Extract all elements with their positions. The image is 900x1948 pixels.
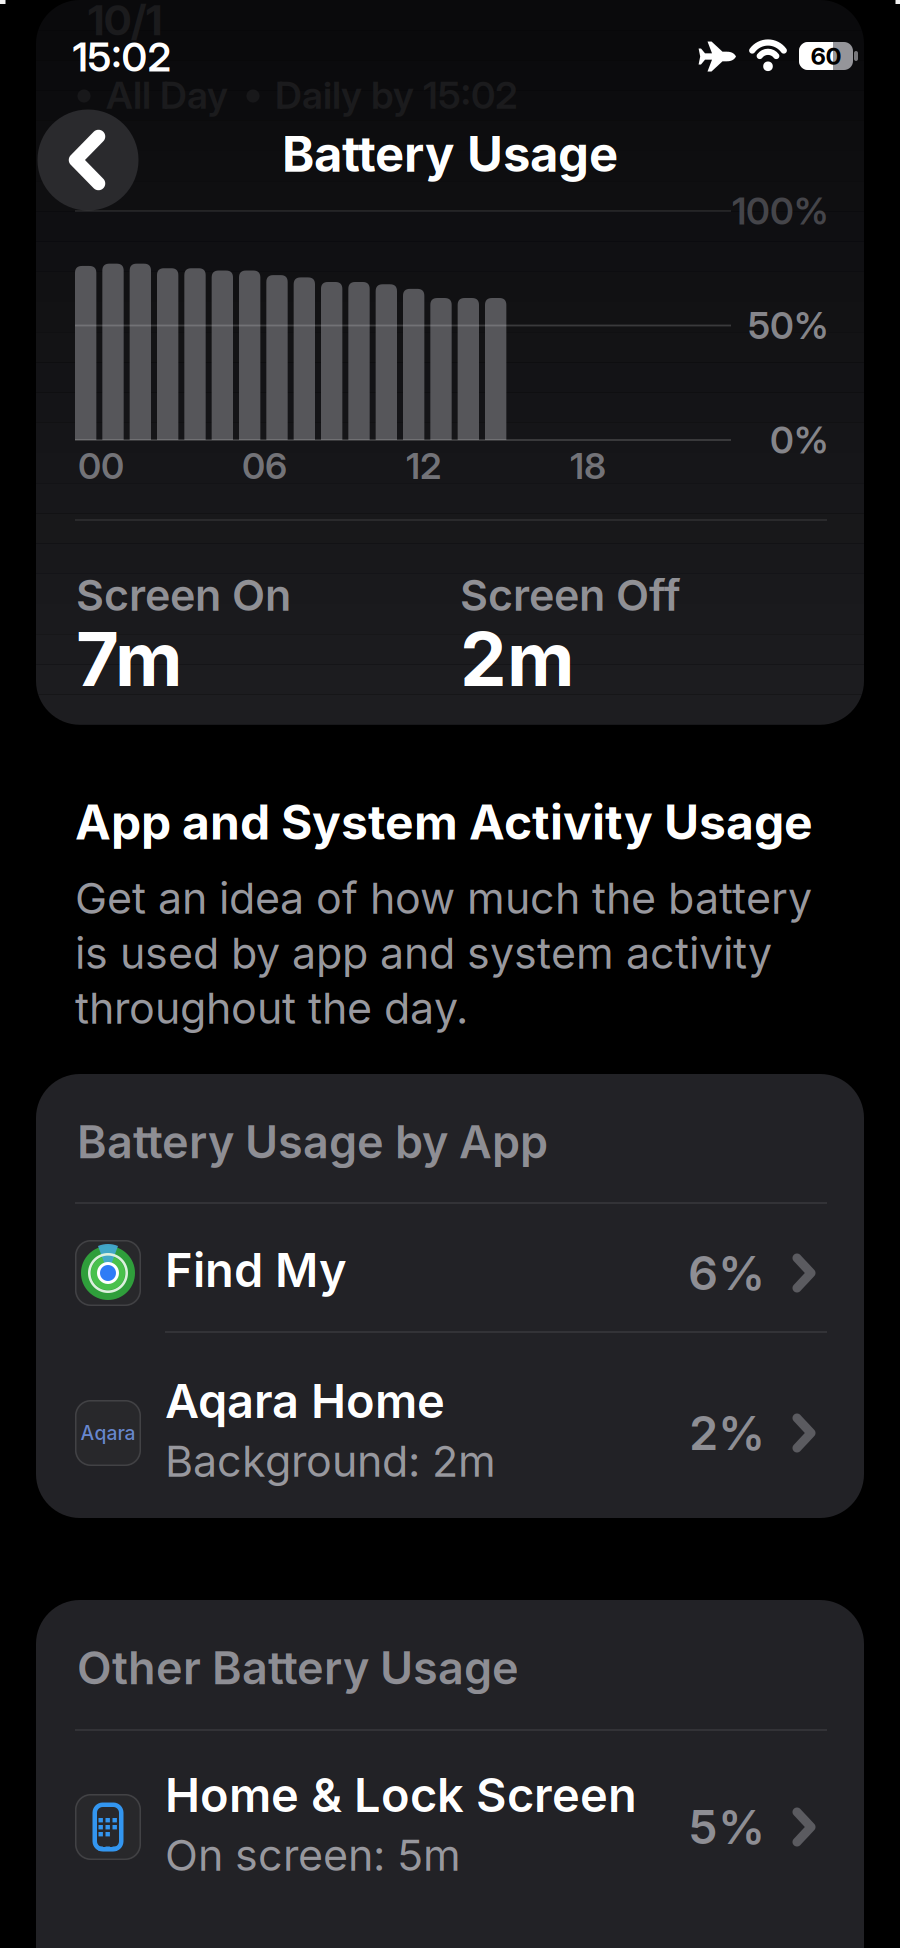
staticText: 2m (460, 614, 575, 704)
staticText: is used by app and system activity (75, 927, 772, 979)
staticText: 12 (406, 444, 441, 488)
staticText: 0% (770, 418, 828, 462)
staticText: throughout the day. (75, 982, 468, 1034)
staticText: 15:02 (72, 33, 171, 81)
staticText: Background: 2m (165, 1435, 496, 1487)
staticText: 10/1 (88, 0, 162, 45)
staticText: Aqara (80, 1421, 135, 1445)
staticText: Screen On (76, 569, 291, 621)
button[interactable]: Back (37, 109, 138, 210)
staticText: On screen: 5m (165, 1829, 461, 1881)
staticText: Home & Lock Screen (165, 1767, 637, 1823)
staticText: Screen Off (460, 569, 681, 621)
staticText: 50% (748, 303, 828, 348)
button[interactable]: Home & Lock Screen (36, 1737, 864, 1917)
staticText: 2% (689, 1405, 765, 1461)
staticText: Aqara Home (165, 1373, 445, 1429)
staticText: 00 (78, 444, 124, 488)
staticText: 100% (732, 189, 828, 233)
staticText: 18 (570, 444, 606, 488)
staticText: Find My (165, 1242, 347, 1298)
staticText: App and System Activity Usage (75, 793, 813, 851)
button[interactable]: Find My (36, 1208, 864, 1338)
staticText: 06 (242, 444, 287, 488)
staticText: 6% (688, 1245, 765, 1301)
staticText: All Day (106, 72, 228, 118)
staticText: Other Battery Usage (77, 1641, 519, 1695)
staticText: Get an idea of how much the battery (75, 872, 812, 924)
staticText: 7m (76, 614, 183, 704)
staticText: 60 (810, 41, 841, 70)
staticText: Battery Usage by App (77, 1115, 548, 1169)
staticText: 5% (688, 1799, 765, 1855)
staticText: Daily by 15:02 (275, 72, 518, 118)
staticText: Battery Usage (282, 124, 618, 184)
button[interactable]: Aqara (36, 1343, 864, 1523)
